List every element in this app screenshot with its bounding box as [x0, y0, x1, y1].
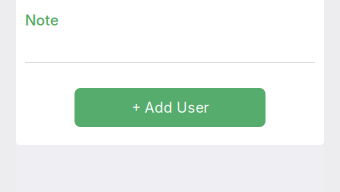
staticText: + Add User — [131, 99, 208, 116]
staticText: Note — [25, 11, 59, 29]
button[interactable]: + Add User — [74, 88, 265, 127]
